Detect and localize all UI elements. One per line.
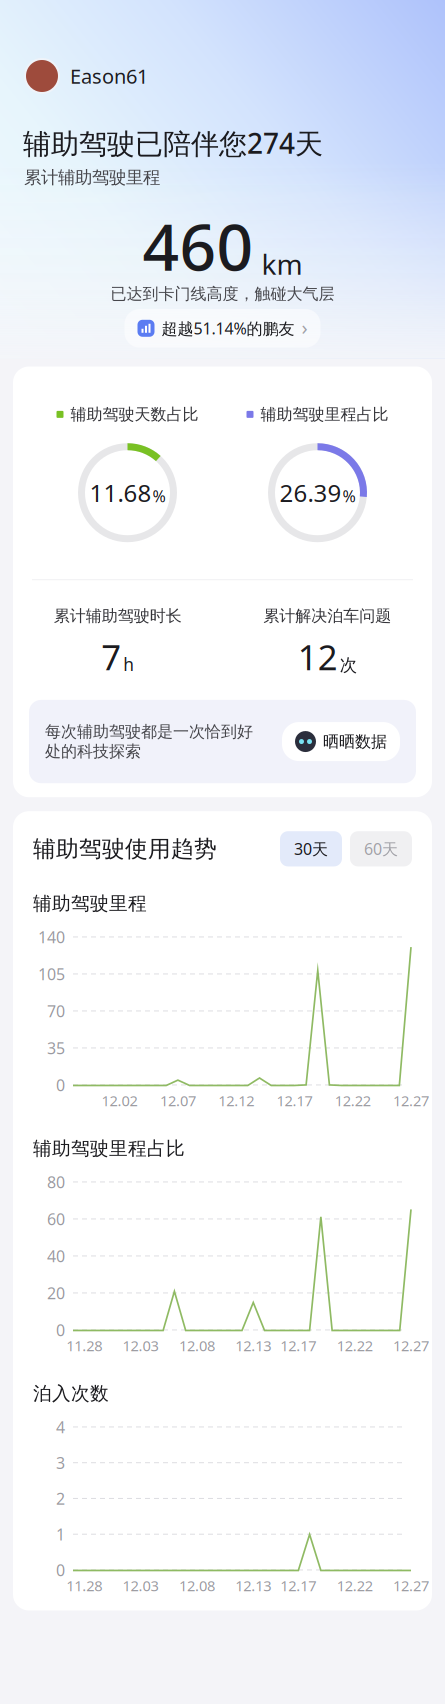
staticText: 40	[47, 1245, 65, 1266]
staticText: 累计辅助驾驶里程	[24, 167, 160, 188]
button[interactable]: 30天	[280, 831, 342, 866]
staticText: 4	[56, 1416, 65, 1437]
staticText: 80	[47, 1171, 65, 1192]
staticText: 辅助驾驶里程占比	[260, 405, 388, 424]
staticText: 60	[47, 1208, 65, 1229]
staticText: 辅助驾驶使用趋势	[33, 835, 217, 863]
staticText: 12.22	[335, 1091, 371, 1110]
staticText: 12.17	[276, 1091, 312, 1110]
staticText: 2	[56, 1488, 65, 1509]
staticText: 12.03	[123, 1576, 159, 1595]
staticText: 0	[56, 1559, 65, 1580]
staticText: 11.68	[89, 477, 151, 509]
staticText: 次	[340, 655, 357, 676]
staticText: 辅助驾驶里程占比	[33, 1137, 185, 1160]
staticText: 辅助驾驶天数占比	[70, 405, 198, 424]
staticText: 累计辅助驾驶时长	[54, 606, 182, 626]
staticText: 12	[298, 634, 338, 680]
staticText: 辅助驾驶里程	[33, 892, 147, 915]
staticText: 12.27	[393, 1336, 429, 1355]
staticText: 12.27	[393, 1091, 429, 1110]
button[interactable]: 60天	[350, 831, 412, 866]
staticText: 30天	[294, 838, 328, 859]
staticText: 3	[56, 1452, 65, 1473]
staticText: 12.08	[179, 1576, 215, 1595]
staticText: 20	[47, 1282, 65, 1303]
staticText: 累计解决泊车问题	[263, 606, 391, 626]
staticText: 1	[56, 1524, 65, 1545]
staticText: 12.08	[179, 1336, 215, 1355]
button[interactable]: 晒晒数据	[282, 722, 400, 761]
staticText: 12.22	[337, 1336, 373, 1355]
staticText: 泊入次数	[33, 1382, 109, 1405]
staticText: 12.12	[218, 1091, 254, 1110]
staticText: 7	[101, 634, 121, 680]
staticText: %	[342, 485, 355, 507]
staticText: km	[261, 245, 302, 282]
staticText: 60天	[364, 838, 398, 859]
staticText: 12.22	[337, 1576, 373, 1595]
staticText: 0	[56, 1074, 65, 1095]
staticText: 12.13	[235, 1336, 271, 1355]
staticText: 140	[38, 926, 65, 947]
staticText: h	[123, 653, 134, 676]
staticText: ›	[301, 314, 307, 341]
staticText: 12.13	[235, 1576, 271, 1595]
staticText: Eason61	[70, 63, 148, 89]
staticText: 12.27	[393, 1576, 429, 1595]
staticText: 超越51.14%的鹏友	[161, 318, 294, 339]
button[interactable]: 超越51.14%的鹏友	[124, 309, 320, 348]
staticText: 26.39	[279, 477, 341, 509]
staticText: 晒晒数据	[323, 732, 387, 751]
staticText: %	[152, 485, 165, 507]
staticText: 11.28	[66, 1576, 102, 1595]
staticText: 12.17	[280, 1336, 316, 1355]
staticText: 460	[142, 203, 253, 288]
staticText: 11.28	[66, 1336, 102, 1355]
staticText: 12.07	[160, 1091, 196, 1110]
staticText: 105	[38, 963, 65, 984]
staticText: 12.02	[102, 1091, 138, 1110]
staticText: 70	[47, 1000, 65, 1021]
staticText: 已达到卡门线高度，触碰大气层	[110, 284, 334, 304]
staticText: 辅助驾驶已陪伴您274天	[23, 124, 323, 162]
staticText: 12.03	[123, 1336, 159, 1355]
staticText: 0	[56, 1319, 65, 1340]
staticText: 35	[47, 1037, 65, 1058]
staticText: 每次辅助驾驶都是一次恰到好处的科技探索	[45, 722, 253, 761]
staticText: 12.17	[280, 1576, 316, 1595]
